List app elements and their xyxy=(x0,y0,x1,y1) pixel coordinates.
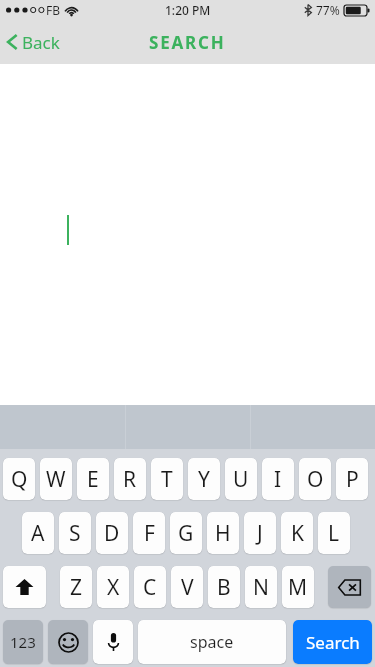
staticText: 77% xyxy=(316,2,340,18)
staticText: R xyxy=(123,465,137,494)
button[interactable]: G xyxy=(170,512,202,554)
staticText: N xyxy=(253,573,269,602)
staticText: O xyxy=(307,465,324,494)
button[interactable]: X xyxy=(97,566,129,608)
button[interactable]: J xyxy=(244,512,276,554)
staticText: K xyxy=(291,519,304,548)
button[interactable]: K xyxy=(281,512,313,554)
button[interactable]: D xyxy=(96,512,128,554)
button[interactable]: I xyxy=(262,458,294,500)
staticText: Search xyxy=(306,631,360,654)
staticText: H xyxy=(215,519,231,548)
button[interactable]: C xyxy=(134,566,166,608)
staticText: space xyxy=(190,631,234,653)
button[interactable]: space xyxy=(138,620,286,664)
staticText: Z xyxy=(70,573,83,602)
staticText: B xyxy=(217,573,231,602)
staticText: E xyxy=(87,465,99,494)
button[interactable]: L xyxy=(318,512,350,554)
staticText: V xyxy=(181,573,194,602)
button[interactable]: Y xyxy=(188,458,220,500)
button[interactable]: Dictate xyxy=(93,620,133,664)
staticText: T xyxy=(161,465,173,494)
button[interactable]: R xyxy=(114,458,146,500)
button[interactable]: Back xyxy=(6,20,60,64)
staticText: Q xyxy=(11,465,28,494)
button[interactable]: T xyxy=(151,458,183,500)
button[interactable]: U xyxy=(225,458,257,500)
staticText: I xyxy=(274,465,282,494)
staticText: W xyxy=(46,465,66,494)
button[interactable]: F xyxy=(133,512,165,554)
button[interactable]: Backspace xyxy=(328,566,371,608)
staticText: 1:20 PM xyxy=(165,2,211,18)
staticText: X xyxy=(107,573,120,602)
button[interactable]: Q xyxy=(3,458,35,500)
button[interactable]: W xyxy=(40,458,72,500)
button[interactable]: H xyxy=(207,512,239,554)
staticText: 123 xyxy=(10,632,36,652)
button[interactable]: S xyxy=(59,512,91,554)
button[interactable]: Shift xyxy=(3,566,46,608)
staticText: Y xyxy=(198,465,210,494)
staticText: Back xyxy=(22,31,60,54)
button[interactable]: N xyxy=(245,566,277,608)
staticText: P xyxy=(346,465,359,494)
staticText: L xyxy=(328,519,340,548)
staticText: J xyxy=(257,519,263,548)
staticText: D xyxy=(104,519,120,548)
button[interactable]: E xyxy=(77,458,109,500)
button[interactable]: Emoji xyxy=(48,620,88,664)
staticText: M xyxy=(288,573,308,602)
button[interactable]: 123 xyxy=(3,620,43,664)
staticText: G xyxy=(178,519,194,548)
button[interactable]: V xyxy=(171,566,203,608)
staticText: U xyxy=(233,465,249,494)
button[interactable]: O xyxy=(299,458,331,500)
button[interactable]: A xyxy=(22,512,54,554)
button[interactable]: Search xyxy=(293,620,372,664)
staticText: F xyxy=(144,519,155,548)
button[interactable]: B xyxy=(208,566,240,608)
staticText: S xyxy=(69,519,81,548)
button[interactable]: Z xyxy=(60,566,92,608)
staticText: SEARCH xyxy=(149,31,226,54)
staticText: A xyxy=(31,519,45,548)
button[interactable]: M xyxy=(282,566,314,608)
staticText: C xyxy=(143,573,157,602)
staticText: FB xyxy=(46,2,61,18)
button[interactable]: P xyxy=(336,458,368,500)
